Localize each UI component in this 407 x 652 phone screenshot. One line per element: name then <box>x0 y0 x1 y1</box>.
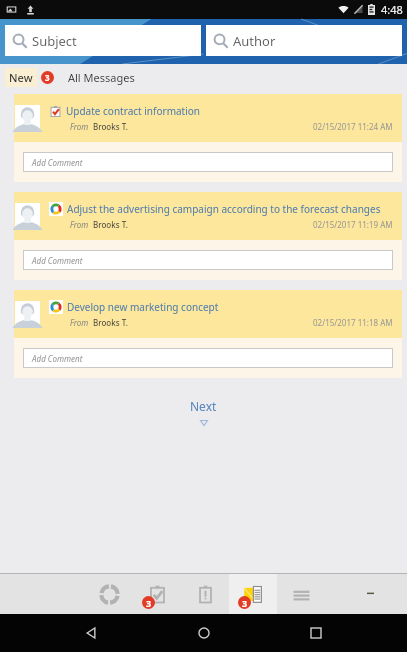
staticText: 02/15/2017 11:18 AM <box>313 317 393 328</box>
staticText: 3 <box>242 597 248 609</box>
button[interactable]: Tasks <box>133 574 181 614</box>
button[interactable]: Recents <box>294 614 338 652</box>
button[interactable]: Alerts <box>181 574 229 614</box>
staticText: 02/15/2017 11:24 AM <box>313 121 393 132</box>
button[interactable]: Add Comment <box>23 348 393 368</box>
staticText: Update contract information <box>66 104 201 118</box>
button[interactable]: Update contract information <box>14 94 402 182</box>
staticText: Brooks T. <box>93 219 128 230</box>
staticText: Next <box>190 398 217 414</box>
button[interactable]: Back <box>69 614 113 652</box>
button[interactable]: New <box>5 68 54 87</box>
button[interactable]: Refresh <box>85 574 133 614</box>
button[interactable]: All Messages <box>66 67 137 88</box>
staticText: Add Comment <box>32 157 83 168</box>
staticText: From <box>70 219 89 230</box>
staticText: From <box>70 121 89 132</box>
staticText: All Messages <box>68 70 135 85</box>
staticText: 4:48 <box>381 2 403 17</box>
staticText: Add Comment <box>32 255 83 266</box>
staticText: Subject <box>32 32 77 50</box>
button[interactable]: Next <box>0 398 407 426</box>
staticText: New <box>9 70 33 85</box>
staticText: From <box>70 317 89 328</box>
button[interactable]: Add Comment <box>23 250 393 270</box>
button[interactable]: Develop new marketing concept <box>14 290 402 378</box>
staticText: 3 <box>146 597 152 609</box>
staticText: Brooks T. <box>93 317 128 328</box>
button[interactable]: Home <box>182 614 226 652</box>
button[interactable]: Menu <box>277 574 325 614</box>
button[interactable]: Add Comment <box>23 152 393 172</box>
staticText: Adjust the advertising campaign accordin… <box>67 202 381 216</box>
staticText: Develop new marketing concept <box>67 300 219 314</box>
staticText: Add Comment <box>32 353 83 364</box>
staticText: Brooks T. <box>93 121 128 132</box>
staticText: Author <box>233 32 276 50</box>
staticText: 02/15/2017 11:19 AM <box>313 219 393 230</box>
button[interactable]: Author <box>206 25 402 56</box>
staticText: 3 <box>45 72 50 83</box>
button[interactable]: Messages <box>229 574 277 614</box>
button[interactable]: Subject <box>5 25 201 56</box>
button[interactable]: Adjust the advertising campaign accordin… <box>14 192 402 280</box>
